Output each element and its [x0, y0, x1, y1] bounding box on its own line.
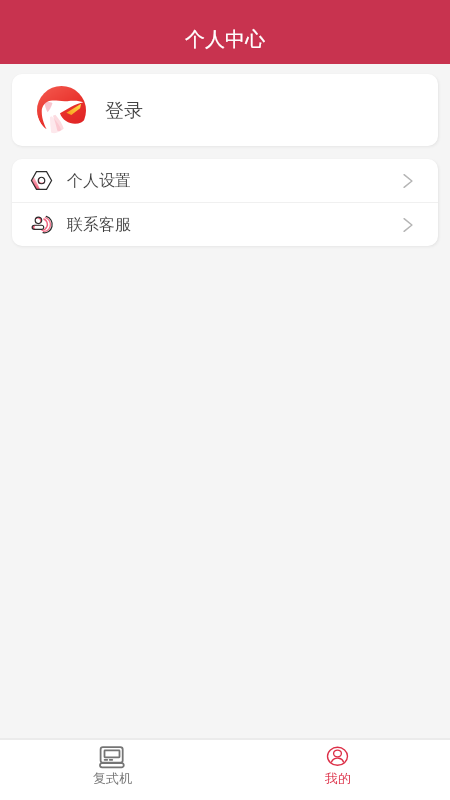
button[interactable]: 个人设置	[12, 159, 438, 202]
button[interactable]: 复式机	[0, 740, 225, 800]
button[interactable]: 联系客服	[12, 203, 438, 246]
staticText: 复式机	[93, 770, 132, 786]
staticText: 登录	[105, 99, 143, 123]
button[interactable]: 我的	[225, 740, 450, 800]
button[interactable]: 登录	[12, 74, 438, 146]
staticText: 联系客服	[67, 215, 131, 235]
staticText: 我的	[325, 770, 351, 786]
staticText: 个人设置	[67, 171, 131, 191]
staticText: 个人中心	[185, 27, 265, 52]
